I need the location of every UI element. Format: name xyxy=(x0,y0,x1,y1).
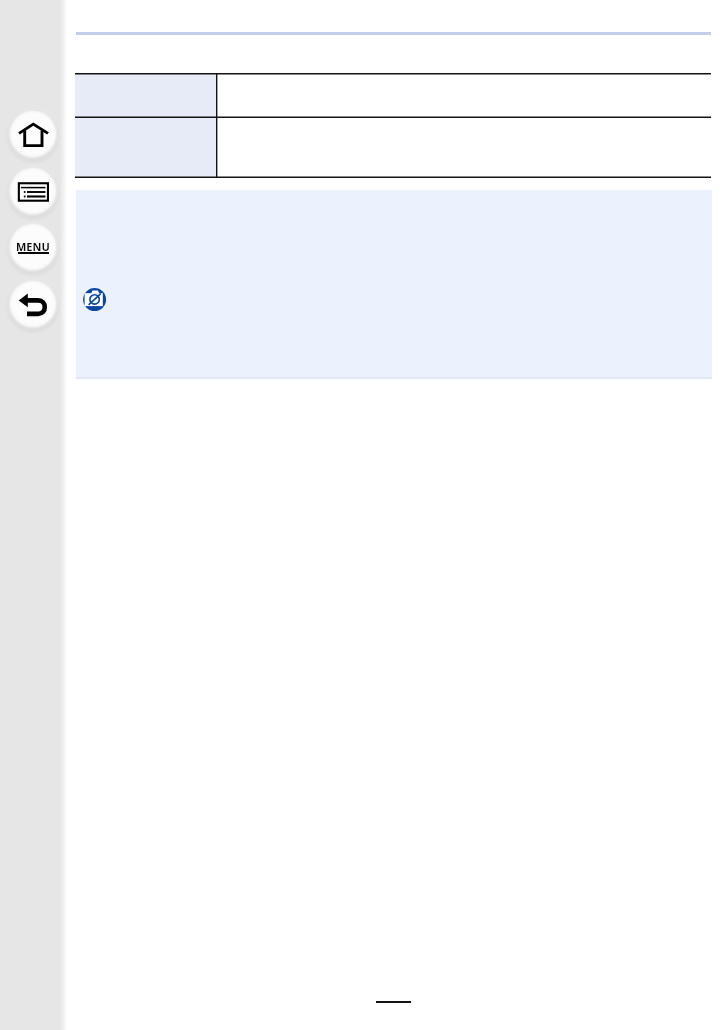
button[interactable]: Back xyxy=(5,276,61,332)
button[interactable]: Contents xyxy=(5,163,61,219)
button[interactable]: Home xyxy=(5,106,61,162)
staticText: MENU xyxy=(16,239,50,254)
button[interactable]: Menu xyxy=(5,219,61,275)
